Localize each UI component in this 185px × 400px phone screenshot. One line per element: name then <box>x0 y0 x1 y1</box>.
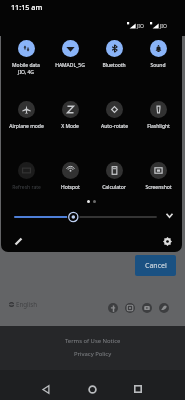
button[interactable]: X Mode <box>48 101 92 130</box>
staticText: Auto-rotate <box>101 123 128 130</box>
button[interactable]: English <box>9 300 38 308</box>
button[interactable]: Back <box>34 377 58 400</box>
staticText: Flashlight <box>147 123 170 130</box>
button[interactable]: Auto-rotate <box>92 101 136 130</box>
button[interactable]: Expand quick settings <box>161 207 177 223</box>
button[interactable]: Airplane mode <box>4 101 48 130</box>
button[interactable]: Twitter <box>159 303 169 313</box>
staticText: JIO <box>160 23 167 30</box>
button[interactable]: Privacy Policy <box>74 350 112 358</box>
button[interactable]: Flashlight <box>136 101 180 130</box>
button[interactable]: Screenshot <box>136 162 180 191</box>
button[interactable]: Bluetooth <box>92 40 136 69</box>
button[interactable]: Refresh rate <box>4 162 48 191</box>
staticText: JIO, 4G <box>18 69 34 76</box>
button[interactable]: Hotspot <box>48 162 92 191</box>
button[interactable]: Mobile data <box>4 40 48 76</box>
staticText: HAMADL_5G <box>55 62 85 69</box>
button[interactable]: Instagram <box>125 303 135 313</box>
button[interactable]: Sound <box>136 40 180 69</box>
button[interactable]: HAMADL_5G <box>48 40 92 69</box>
button[interactable]: YouTube <box>142 303 152 313</box>
staticText: Hotspot <box>61 184 80 191</box>
button[interactable]: Facebook <box>108 303 118 313</box>
button[interactable]: Edit tiles <box>10 233 26 249</box>
staticText: Mobile data <box>12 62 40 69</box>
button[interactable]: Recent apps <box>126 377 150 400</box>
staticText: Calculator <box>102 184 126 191</box>
staticText: English <box>16 300 38 308</box>
staticText: Refresh rate <box>12 184 41 191</box>
staticText: Screenshot <box>145 184 172 191</box>
staticText: Cancel <box>145 261 167 271</box>
button[interactable]: Home <box>80 377 104 400</box>
button[interactable]: Calculator <box>92 162 136 191</box>
button[interactable]: Settings <box>159 233 175 249</box>
button[interactable]: Cancel <box>135 255 176 276</box>
button[interactable]: Terms of Use Notice <box>65 337 121 345</box>
staticText: 11:15 am <box>11 2 43 12</box>
staticText: Airplane mode <box>9 123 44 130</box>
staticText: Bluetooth <box>102 62 126 69</box>
staticText: Sound <box>150 62 166 69</box>
staticText: JIO <box>137 23 144 30</box>
staticText: X Mode <box>61 123 79 130</box>
